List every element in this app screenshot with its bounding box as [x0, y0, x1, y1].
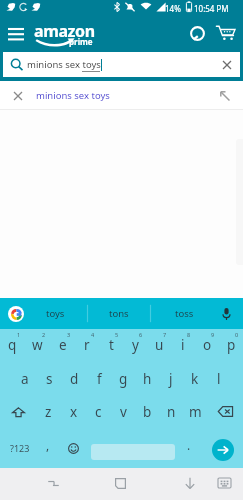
staticText: w	[32, 336, 43, 354]
button[interactable]: l	[207, 362, 231, 395]
button[interactable]: q	[0, 329, 25, 362]
button[interactable]: Search	[212, 439, 234, 461]
button[interactable]: e	[50, 329, 75, 362]
button[interactable]: Voice input	[217, 305, 235, 323]
button[interactable]: tons	[94, 298, 144, 329]
button[interactable]: Switch keyboard	[209, 468, 239, 498]
button[interactable]: Alexa	[182, 18, 212, 48]
staticText: 1	[17, 331, 21, 338]
button[interactable]: Clear search	[216, 54, 238, 76]
staticText: 10:54 PM	[194, 3, 229, 14]
button[interactable]: Home	[105, 468, 135, 498]
staticText: h	[143, 370, 152, 388]
button[interactable]: Google	[8, 306, 24, 322]
staticText: 3	[67, 331, 71, 338]
button[interactable]: Back	[175, 468, 205, 498]
staticText: minions sex toys	[36, 89, 110, 102]
button[interactable]: w	[25, 329, 50, 362]
staticText: p	[227, 336, 236, 354]
button[interactable]: Menu	[0, 17, 32, 49]
staticText: e	[59, 336, 67, 354]
button[interactable]: Hide keyboard	[38, 468, 68, 498]
staticText: minions sex toys	[27, 58, 101, 71]
button[interactable]: u	[147, 329, 171, 362]
button[interactable]: c	[86, 395, 111, 428]
staticText: 6	[139, 331, 143, 338]
staticText: 4	[91, 331, 95, 338]
staticText: .	[187, 437, 191, 453]
staticText: 0	[235, 331, 239, 338]
staticText: tons	[109, 307, 129, 320]
staticText: n	[167, 403, 176, 421]
button[interactable]: i	[171, 329, 195, 362]
staticText: g	[119, 370, 128, 388]
button[interactable]: r	[75, 329, 99, 362]
staticText: 5	[115, 331, 119, 338]
staticText: i	[181, 336, 185, 354]
staticText: toss	[175, 307, 194, 320]
staticText: f	[97, 370, 102, 388]
staticText: a	[21, 370, 29, 388]
staticText: amazon	[34, 20, 95, 42]
staticText: toys	[46, 307, 65, 320]
button[interactable]: v	[111, 395, 135, 428]
button[interactable]: m	[183, 395, 207, 428]
staticText: 2	[42, 331, 46, 338]
button[interactable]: b	[135, 395, 159, 428]
staticText: 9	[211, 331, 215, 338]
button[interactable]: p	[219, 329, 243, 362]
staticText: c	[95, 403, 102, 421]
button[interactable]: j	[159, 362, 183, 395]
staticText: o	[203, 336, 212, 354]
button[interactable]: t	[99, 329, 123, 362]
button[interactable]: Shift	[0, 395, 36, 428]
button[interactable]: amazon prime	[34, 14, 108, 52]
button[interactable]: d	[62, 362, 87, 395]
staticText: t	[109, 336, 114, 354]
staticText: ?123	[10, 442, 30, 454]
staticText: v	[120, 403, 127, 421]
button[interactable]: minions sex toys	[0, 81, 243, 110]
button[interactable]: toys	[30, 298, 80, 329]
button[interactable]: s	[37, 362, 62, 395]
staticText: y	[132, 336, 139, 354]
staticText: l	[217, 370, 221, 388]
button[interactable]: minions sex toys	[3, 52, 240, 77]
staticText: r	[84, 336, 90, 354]
staticText: 8	[187, 331, 191, 338]
staticText: prime	[69, 36, 93, 47]
button[interactable]: .	[178, 433, 200, 463]
staticText: m	[189, 403, 202, 421]
staticText: d	[70, 370, 79, 388]
staticText: j	[169, 370, 173, 388]
button[interactable]: o	[195, 329, 219, 362]
button[interactable]: toss	[159, 298, 209, 329]
staticText: k	[191, 370, 199, 388]
button[interactable]: k	[183, 362, 207, 395]
staticText: 7	[163, 331, 167, 338]
staticText: s	[46, 370, 53, 388]
button[interactable]: Cart	[210, 18, 240, 48]
button[interactable]: n	[159, 395, 183, 428]
button[interactable]: a	[12, 362, 37, 395]
staticText: x	[70, 403, 78, 421]
staticText: 14%	[165, 3, 181, 14]
button[interactable]: ,	[37, 433, 59, 463]
button[interactable]: h	[135, 362, 159, 395]
staticText: u	[155, 336, 164, 354]
staticText: ,	[46, 437, 50, 453]
button[interactable]: Space	[91, 444, 175, 460]
button[interactable]: Use suggestion	[216, 87, 234, 105]
button[interactable]: f	[87, 362, 111, 395]
button[interactable]: z	[36, 395, 61, 428]
staticText: b	[143, 403, 152, 421]
button[interactable]: g	[111, 362, 135, 395]
button[interactable]: Backspace	[207, 395, 243, 428]
button[interactable]: y	[123, 329, 147, 362]
staticText: z	[45, 403, 52, 421]
button[interactable]: x	[61, 395, 86, 428]
button[interactable]: ?123	[0, 433, 40, 463]
button[interactable]: Emoji	[62, 433, 84, 463]
staticText: q	[8, 336, 17, 354]
